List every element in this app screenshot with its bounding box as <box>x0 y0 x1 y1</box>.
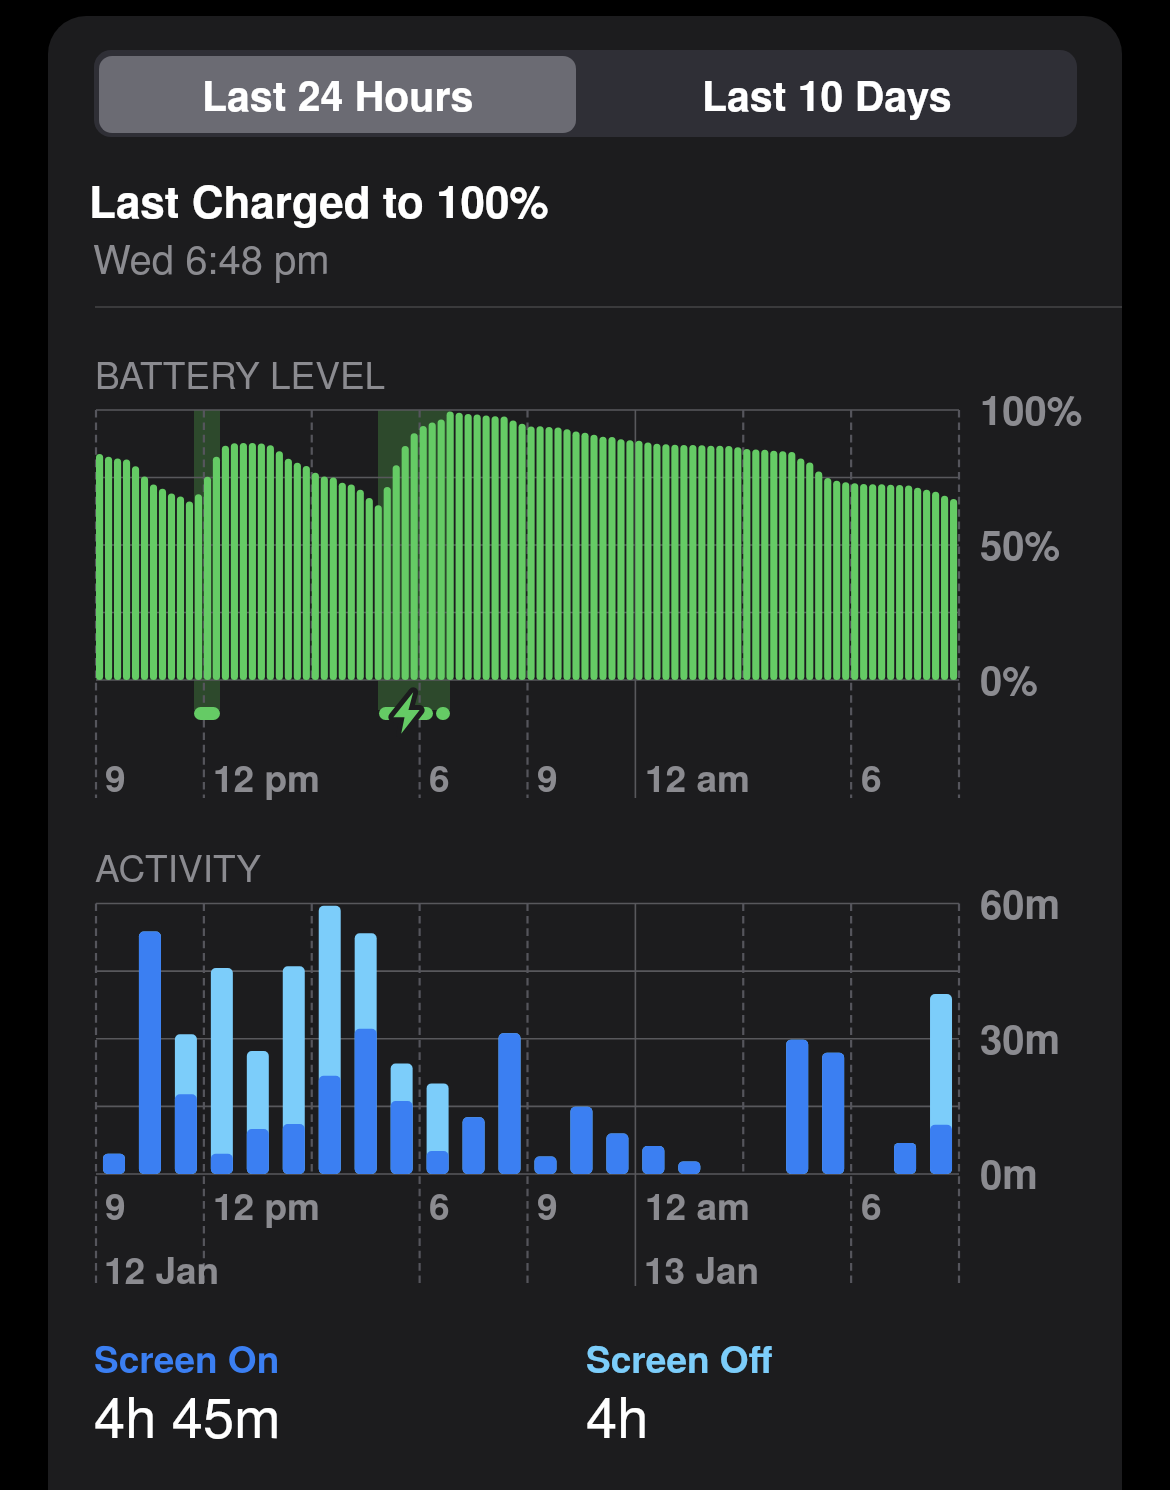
staticText: 100% <box>980 380 1083 437</box>
staticText: 12 pm <box>213 750 320 803</box>
staticText: 4h <box>586 1374 649 1454</box>
staticText: Last 10 Days <box>702 65 952 124</box>
staticText: 6 <box>861 750 882 803</box>
staticText: 12 Jan <box>104 1242 220 1295</box>
staticText: Screen Off <box>586 1331 773 1384</box>
staticText: 9 <box>537 750 558 803</box>
staticText: 6 <box>861 1178 882 1231</box>
staticText: 50% <box>980 515 1061 572</box>
other: Charging period <box>379 690 451 736</box>
staticText: 0m <box>980 1144 1038 1201</box>
staticText: 30m <box>980 1009 1061 1066</box>
button[interactable]: Last 10 Days <box>581 56 1072 133</box>
staticText: 12 pm <box>213 1178 320 1231</box>
staticText: 9 <box>105 750 126 803</box>
staticText: Screen On <box>94 1331 280 1384</box>
staticText: 6 <box>429 750 450 803</box>
staticText: Last Charged to 100% <box>89 168 549 231</box>
staticText: Wed 6:48 pm <box>93 228 330 285</box>
staticText: ACTIVITY <box>95 840 261 893</box>
button[interactable]: Last 24 Hours <box>99 56 576 133</box>
staticText: 13 Jan <box>644 1242 760 1295</box>
staticText: 0% <box>980 650 1038 707</box>
staticText: 4h 45m <box>94 1374 281 1454</box>
staticText: 9 <box>105 1178 126 1231</box>
staticText: 6 <box>429 1178 450 1231</box>
staticText: Last 24 Hours <box>202 65 474 124</box>
staticText: 9 <box>537 1178 558 1231</box>
staticText: BATTERY LEVEL <box>95 347 386 400</box>
staticText: 60m <box>980 874 1061 931</box>
staticText: 12 am <box>645 1178 750 1231</box>
staticText: 12 am <box>645 750 750 803</box>
